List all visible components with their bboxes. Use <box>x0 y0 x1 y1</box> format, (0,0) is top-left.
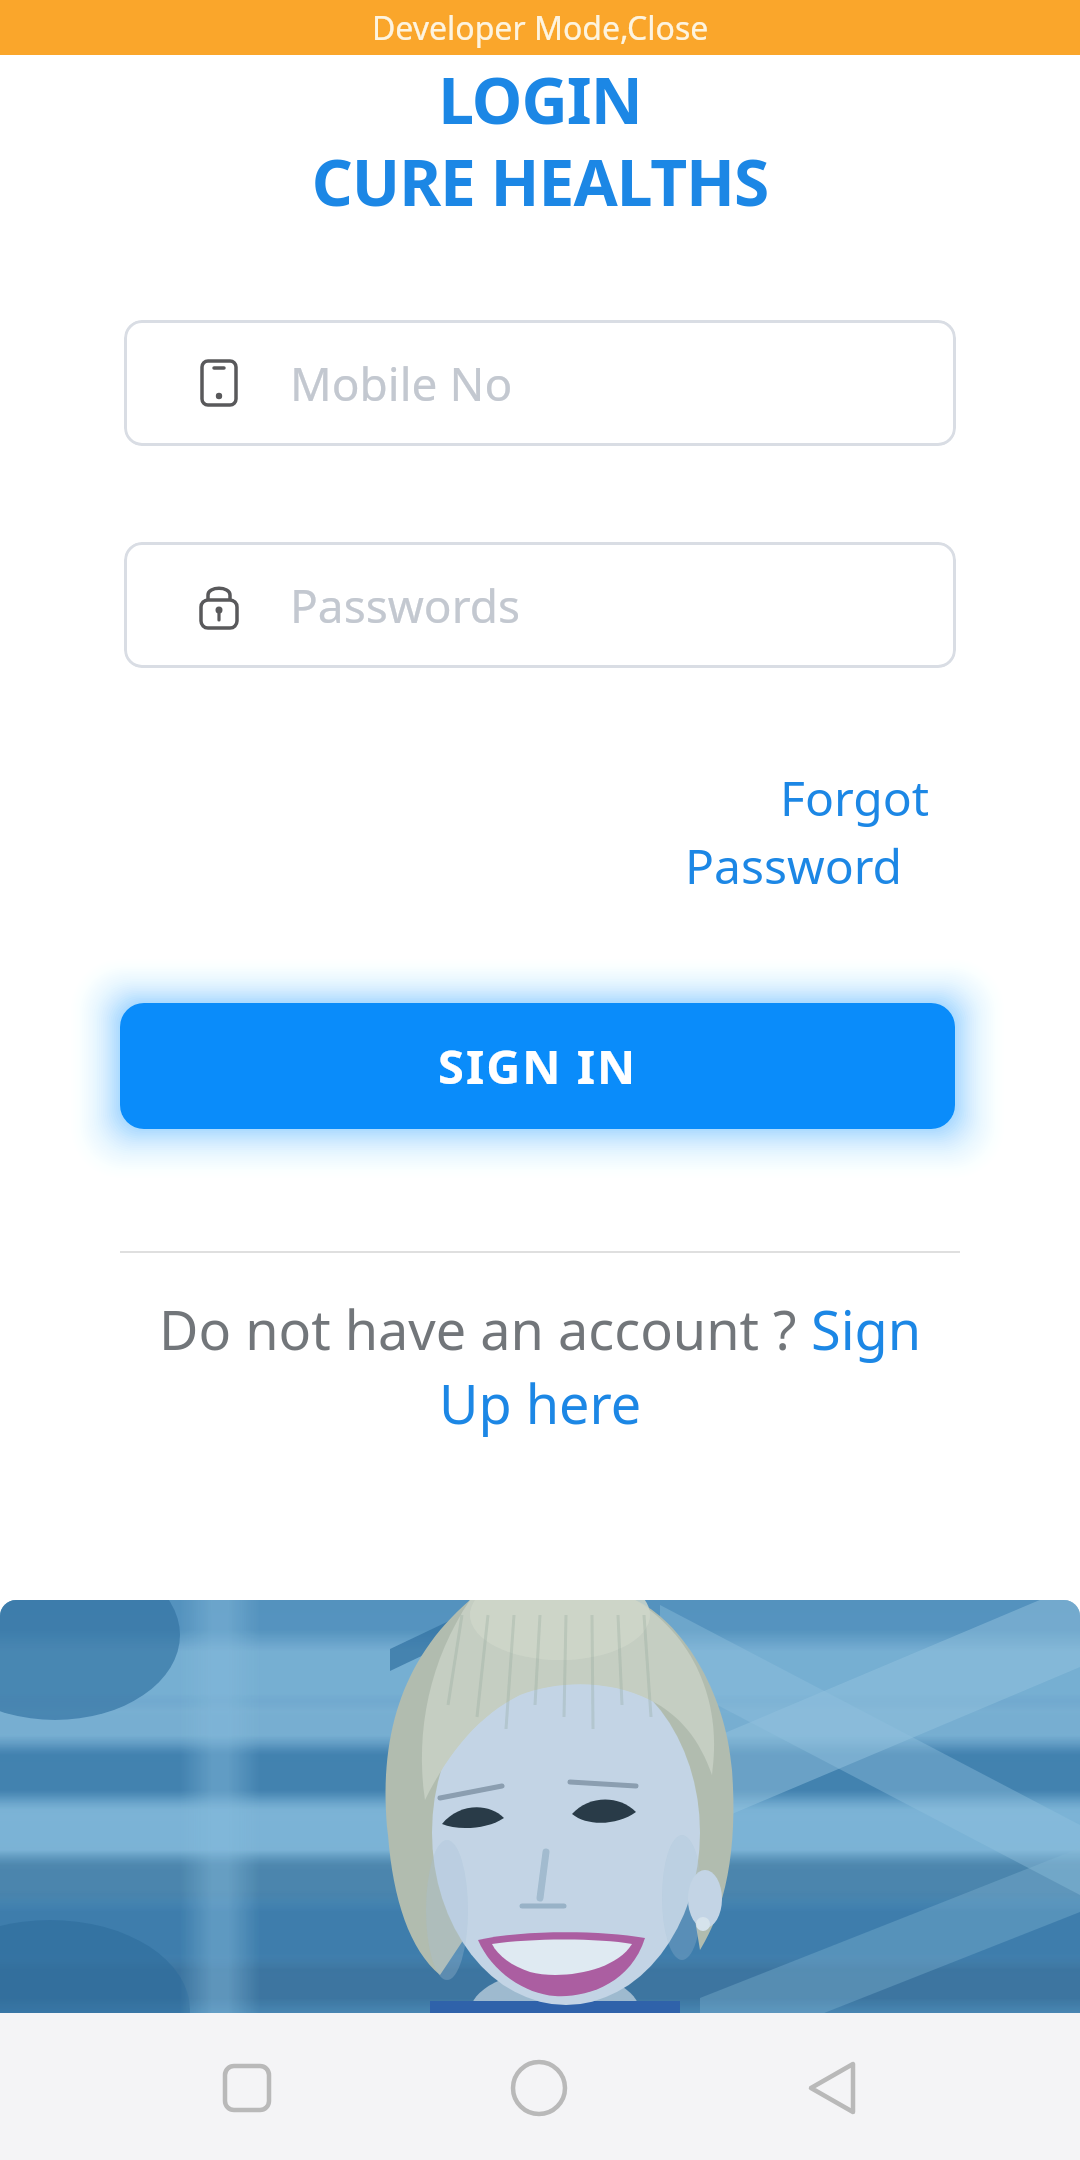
staticText: Up here <box>439 1366 642 1440</box>
button[interactable]: SIGN IN <box>120 1003 955 1129</box>
button[interactable] <box>211 2052 283 2124</box>
button[interactable]: Passwords <box>124 542 956 668</box>
staticText: Do not have an account ? <box>159 1292 811 1366</box>
staticText: Passwords <box>290 574 521 637</box>
staticText: Forgot <box>780 765 930 830</box>
staticText: Password <box>685 833 903 898</box>
staticText: CURE HEALTHS <box>0 138 1080 225</box>
button[interactable]: Forgot <box>620 765 980 915</box>
button[interactable] <box>503 2052 575 2124</box>
staticText: Mobile No <box>290 352 513 415</box>
staticText: SIGN IN <box>438 1034 638 1098</box>
staticText: Developer Mode,Close <box>372 6 709 50</box>
staticText: Sign <box>811 1292 922 1366</box>
button[interactable] <box>795 2052 867 2124</box>
button[interactable]: Developer Mode,Close <box>0 0 1080 55</box>
staticText: LOGIN <box>0 56 1080 143</box>
button[interactable]: Mobile No <box>124 320 956 446</box>
button[interactable]: Do not have an account ? <box>0 1292 1080 1366</box>
